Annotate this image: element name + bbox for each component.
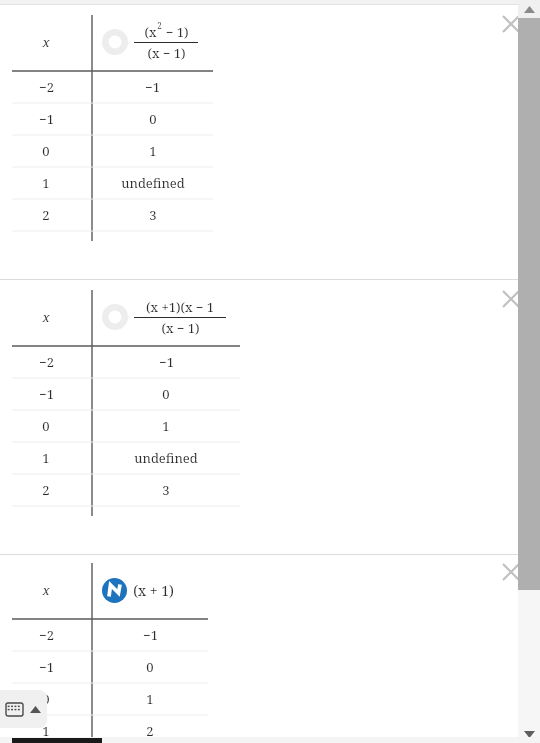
staticText: 2 — [146, 722, 154, 740]
staticText: undefined — [121, 174, 185, 192]
staticText: x — [42, 581, 50, 599]
staticText: 2 — [157, 20, 162, 31]
staticText: 2 — [42, 481, 50, 499]
staticText: undefined — [134, 449, 198, 467]
staticText: (x +1)(x − 1 — [146, 298, 214, 316]
staticText: (x − 1) — [161, 319, 200, 337]
staticText: 1 — [42, 174, 50, 192]
staticText: 1 — [146, 690, 154, 708]
staticText: −1 — [145, 78, 160, 96]
staticText: (x − 1) — [147, 44, 186, 62]
staticText: 1 — [42, 722, 50, 740]
staticText: 0 — [162, 385, 170, 403]
button[interactable]: x — [0, 5, 540, 279]
button[interactable]: Close — [498, 286, 524, 312]
button[interactable]: Show keyboard — [0, 690, 47, 728]
staticText: 0 — [42, 417, 50, 435]
staticText: 0 — [149, 110, 157, 128]
button[interactable]: x — [0, 555, 540, 743]
staticText: 1 — [149, 142, 157, 160]
staticText: −1 — [39, 658, 54, 676]
staticText: −1 — [39, 385, 54, 403]
staticText: −2 — [39, 626, 54, 644]
staticText: −2 — [39, 78, 54, 96]
staticText: (x — [144, 23, 157, 41]
staticText: −1 — [143, 626, 158, 644]
staticText: −1 — [159, 353, 174, 371]
staticText: 3 — [149, 206, 157, 224]
staticText: − 1) — [162, 23, 189, 41]
button[interactable]: Scroll up — [518, 0, 540, 18]
button[interactable]: Scroll down — [518, 725, 540, 743]
staticText: −2 — [39, 353, 54, 371]
staticText: 0 — [42, 690, 50, 708]
staticText: 1 — [42, 449, 50, 467]
staticText: −1 — [39, 110, 54, 128]
button[interactable]: Close — [498, 11, 524, 37]
staticText: 0 — [42, 142, 50, 160]
staticText: (x + 1) — [133, 581, 174, 600]
staticText: x — [42, 33, 50, 51]
staticText: 0 — [146, 658, 154, 676]
staticText: x — [42, 308, 50, 326]
button[interactable]: Close — [498, 559, 524, 585]
staticText: 3 — [162, 481, 170, 499]
staticText: 2 — [42, 206, 50, 224]
button[interactable]: x — [0, 280, 540, 554]
staticText: 1 — [162, 417, 170, 435]
